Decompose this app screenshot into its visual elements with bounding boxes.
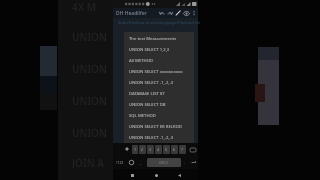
button[interactable]: The test Measurements: [129, 33, 194, 44]
button[interactable]: UNION SELECT xxxxxxxxxx: [129, 66, 194, 77]
staticText: UNION SELECT 1,2,3: [129, 47, 170, 53]
button[interactable]: UNION SELECT 1,2,3: [129, 44, 194, 55]
button[interactable]: Home: [151, 170, 161, 180]
button[interactable]: ,: [138, 158, 144, 167]
staticText: KWGT: [159, 160, 169, 165]
staticText: UNION SELECT ER RELROD: [129, 124, 183, 130]
staticText: .: [184, 160, 186, 165]
button[interactable]: 2: [139, 145, 146, 154]
staticText: UNION SELECT xxxxxxxxxx: [129, 69, 183, 75]
staticText: 7: [181, 147, 184, 152]
button[interactable]: SQL METHOD: [129, 110, 194, 121]
button[interactable]: Recents: [127, 170, 137, 180]
button[interactable]: Undo: [158, 9, 166, 17]
button[interactable]: Preview: [182, 9, 190, 17]
button[interactable]: Emoji: [127, 158, 136, 167]
staticText: DATABASE LIST 87: [129, 91, 165, 97]
button[interactable]: 7: [179, 145, 186, 154]
staticText: UNION SELECT DB: [129, 102, 166, 108]
staticText: ,: [140, 160, 142, 165]
staticText: 1: [134, 147, 137, 152]
button[interactable]: UNION SELECT -1,-2,-3: [129, 77, 194, 88]
staticText: All METHOD: [129, 58, 154, 64]
button[interactable]: 1: [132, 145, 138, 154]
button[interactable]: Redo: [166, 9, 174, 17]
button[interactable]: 3: [147, 145, 154, 154]
staticText: DH Headlifer: [116, 10, 147, 17]
button[interactable]: Voice input: [123, 145, 130, 152]
staticText: UNION SELECT -1,-2,-3: [129, 135, 174, 141]
staticText: The test Measurements: [129, 36, 177, 42]
staticText: 4: [157, 147, 160, 152]
staticText: Search below to see language/Payload lis…: [118, 20, 201, 26]
button[interactable]: Enter: [189, 158, 197, 167]
staticText: SQL METHOD: [129, 113, 156, 119]
button[interactable]: ?123: [114, 158, 126, 167]
staticText: 5: [165, 147, 168, 152]
button[interactable]: UNION SELECT DB: [129, 99, 194, 110]
staticText: 6: [173, 147, 176, 152]
button[interactable]: UNION SELECT -1,-2,-3: [129, 132, 194, 143]
staticText: UNION: [72, 30, 107, 42]
staticText: 2: [141, 147, 144, 152]
button[interactable]: Back: [174, 170, 184, 180]
button[interactable]: 6: [171, 145, 178, 154]
staticText: ?123: [116, 160, 124, 165]
button[interactable]: More options: [190, 9, 198, 17]
button[interactable]: 5: [163, 145, 170, 154]
button[interactable]: Backspace: [188, 145, 197, 154]
button[interactable]: KWGT: [147, 158, 181, 167]
button[interactable]: UNION SELECT ER RELROD: [129, 121, 194, 132]
button[interactable]: Edit: [174, 9, 182, 17]
staticText: JOIN A: [72, 156, 104, 168]
staticText: 3: [149, 147, 152, 152]
staticText: UNION SELECT -1,-2,-3: [129, 80, 174, 86]
button[interactable]: .: [182, 158, 188, 167]
staticText: UNION: [72, 94, 107, 106]
button[interactable]: All METHOD: [129, 55, 194, 66]
staticText: UNION: [72, 62, 107, 74]
staticText: 4X M: [72, 0, 96, 12]
staticText: UNION: [72, 126, 107, 138]
button[interactable]: 4: [155, 145, 162, 154]
button[interactable]: DATABASE LIST 87: [129, 88, 194, 99]
